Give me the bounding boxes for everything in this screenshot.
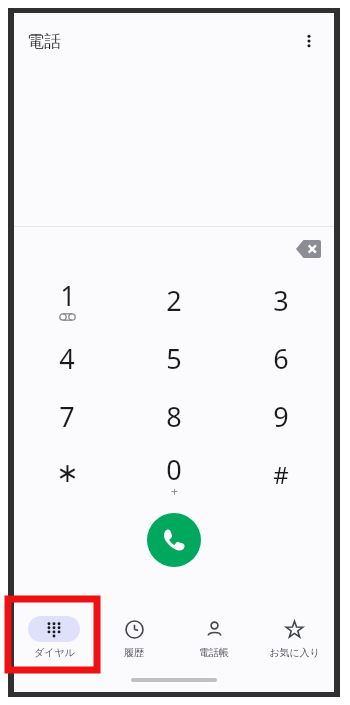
staticText: 履歴 [124, 646, 144, 659]
staticText: 5 [166, 340, 182, 377]
button[interactable]: 8 [120, 387, 227, 445]
staticText: ダイヤル [34, 646, 75, 659]
button[interactable]: 7 [14, 387, 120, 445]
button[interactable]: 3 [227, 271, 334, 329]
staticText: 8 [166, 398, 182, 435]
button[interactable]: 6 [227, 329, 334, 387]
button[interactable]: 5 [120, 329, 227, 387]
button[interactable]: 2 [120, 271, 227, 329]
staticText: 7 [59, 398, 75, 435]
staticText: + [171, 483, 178, 499]
staticText: 電話 [27, 31, 61, 52]
staticText: 6 [273, 340, 289, 377]
button[interactable]: 0 [120, 445, 227, 503]
button[interactable]: 発信 [147, 513, 201, 567]
button[interactable]: 削除 [290, 231, 326, 267]
staticText: 2 [166, 282, 182, 319]
staticText: 4 [59, 340, 75, 377]
button[interactable]: 1 [14, 271, 120, 329]
button[interactable]: ∗ [14, 445, 120, 503]
button[interactable]: 電話帳 [174, 609, 254, 671]
staticText: 電話帳 [199, 646, 229, 659]
button[interactable]: その他のオプション [292, 24, 326, 58]
button[interactable]: 履歴 [94, 609, 174, 671]
button[interactable]: # [227, 445, 334, 503]
button[interactable]: 4 [14, 329, 120, 387]
staticText: # [273, 458, 289, 491]
staticText: 0 [166, 451, 182, 488]
staticText: 3 [273, 282, 289, 319]
button[interactable]: 9 [227, 387, 334, 445]
staticText: お気に入り [269, 646, 320, 659]
button[interactable]: お気に入り [254, 609, 334, 671]
staticText: 9 [273, 398, 289, 435]
button[interactable]: ダイヤル [14, 609, 94, 671]
staticText: 1 [60, 277, 76, 314]
staticText: ∗ [56, 457, 79, 488]
